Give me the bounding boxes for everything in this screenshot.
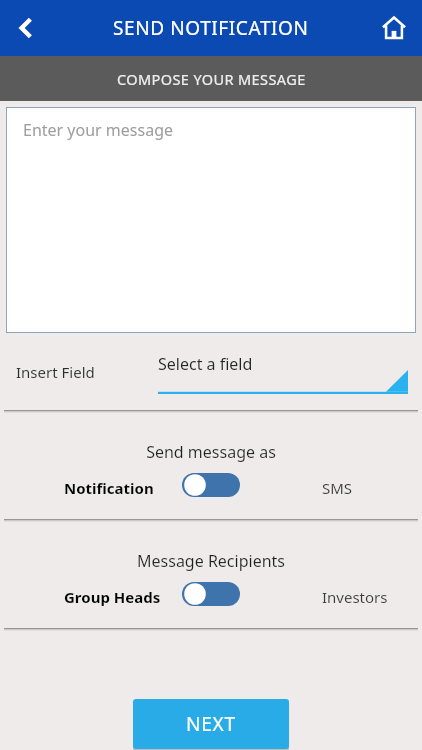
button[interactable]: Enter your message: [6, 107, 416, 333]
staticText: SMS: [322, 478, 353, 498]
staticText: Select a field: [158, 353, 253, 375]
staticText: Insert Field: [16, 362, 95, 382]
button[interactable]: Group Heads or Investors toggle: [182, 579, 240, 609]
staticText: Send message as: [146, 441, 276, 463]
staticText: Group Heads: [64, 587, 161, 607]
staticText: NEXT: [186, 711, 236, 737]
staticText: Investors: [322, 587, 388, 607]
button[interactable]: Home: [366, 0, 422, 56]
button[interactable]: Back: [0, 2, 52, 54]
staticText: COMPOSE YOUR MESSAGE: [117, 69, 306, 89]
button[interactable]: NEXT: [133, 699, 289, 749]
button[interactable]: Select a field: [158, 350, 408, 394]
staticText: Enter your message: [23, 119, 174, 141]
staticText: Message Recipients: [137, 550, 285, 572]
staticText: Notification: [64, 478, 154, 498]
staticText: SEND NOTIFICATION: [113, 15, 309, 41]
button[interactable]: Notification or SMS toggle: [182, 470, 240, 500]
